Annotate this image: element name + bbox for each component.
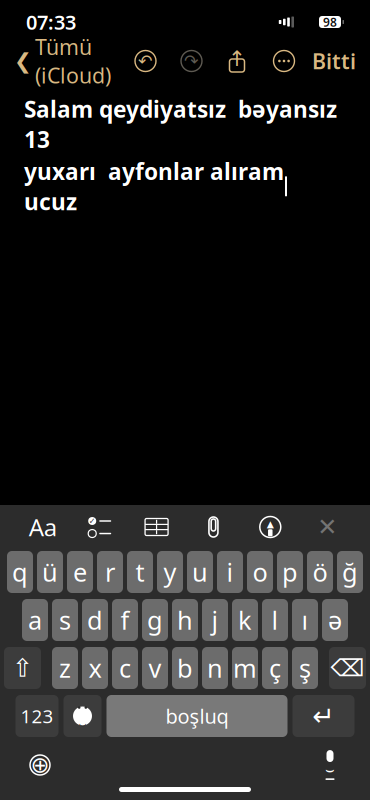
- staticText: ⇧: [12, 654, 33, 682]
- button[interactable]: e: [67, 551, 93, 593]
- staticText: j: [211, 603, 218, 637]
- button[interactable]: Share: [226, 48, 248, 74]
- button[interactable]: Hide keyboard: [305, 509, 349, 545]
- button[interactable]: ı: [292, 599, 318, 641]
- button[interactable]: Redo: [179, 49, 203, 73]
- staticText: t: [135, 555, 144, 589]
- button[interactable]: Undo: [133, 49, 157, 73]
- button[interactable]: ❮: [14, 27, 111, 95]
- staticText: m: [233, 651, 257, 685]
- button[interactable]: ü: [37, 551, 63, 593]
- staticText: ü: [42, 555, 58, 589]
- button[interactable]: Attach: [191, 509, 235, 545]
- staticText: ↵: [312, 701, 334, 731]
- staticText: d: [87, 603, 103, 637]
- staticText: ⌫: [330, 654, 364, 682]
- staticText: p: [282, 555, 298, 589]
- staticText: ğ: [342, 555, 358, 589]
- button[interactable]: q: [7, 551, 33, 593]
- button[interactable]: ö: [307, 551, 333, 593]
- staticText: f: [120, 603, 129, 637]
- button[interactable]: j: [202, 599, 228, 641]
- button[interactable]: Delete: [329, 647, 366, 689]
- button[interactable]: boşluq: [106, 695, 287, 737]
- staticText: Aa: [29, 511, 57, 543]
- staticText: ✕: [317, 513, 337, 541]
- staticText: ç: [269, 651, 281, 685]
- button[interactable]: a: [22, 599, 48, 641]
- staticText: ↷: [184, 51, 199, 71]
- staticText: 123: [20, 704, 53, 728]
- button[interactable]: Emoji: [63, 695, 101, 737]
- staticText: ↑: [228, 46, 246, 71]
- staticText: u: [192, 555, 208, 589]
- staticText: ‿: [79, 711, 86, 727]
- staticText: k: [238, 603, 252, 637]
- staticText: Bitti: [312, 47, 356, 75]
- staticText: v: [148, 651, 161, 685]
- button[interactable]: g: [142, 599, 168, 641]
- button[interactable]: r: [97, 551, 123, 593]
- button[interactable]: ğ: [337, 551, 363, 593]
- button[interactable]: b: [172, 647, 198, 689]
- button[interactable]: Text format: [21, 509, 65, 545]
- button[interactable]: l: [262, 599, 288, 641]
- staticText: Tümü (iCloud): [35, 33, 111, 89]
- staticText: x: [88, 651, 101, 685]
- button[interactable]: z: [52, 647, 78, 689]
- button[interactable]: Return: [292, 695, 354, 737]
- button[interactable]: i: [217, 551, 243, 593]
- button[interactable]: o: [247, 551, 273, 593]
- staticText: r: [105, 555, 115, 589]
- button[interactable]: h: [172, 599, 198, 641]
- button[interactable]: ə: [322, 599, 348, 641]
- staticText: i: [226, 555, 233, 589]
- button[interactable]: x: [82, 647, 108, 689]
- button[interactable]: Shift: [4, 647, 41, 689]
- button[interactable]: s: [52, 599, 78, 641]
- staticText: ö: [312, 555, 327, 589]
- staticText: ı: [301, 603, 308, 637]
- button[interactable]: More: [272, 49, 296, 73]
- button[interactable]: d: [82, 599, 108, 641]
- button[interactable]: k: [232, 599, 258, 641]
- button[interactable]: n: [202, 647, 228, 689]
- staticText: ❮: [14, 49, 32, 73]
- button[interactable]: Checklist: [78, 509, 122, 545]
- staticText: ə: [328, 603, 342, 637]
- staticText: c: [119, 651, 131, 685]
- button[interactable]: t: [127, 551, 153, 593]
- button[interactable]: ç: [262, 647, 288, 689]
- button[interactable]: y: [157, 551, 183, 593]
- staticText: a: [28, 603, 42, 637]
- staticText: ▲: [267, 519, 274, 529]
- button[interactable]: p: [277, 551, 303, 593]
- button[interactable]: Table: [135, 509, 179, 545]
- staticText: yuxarı ayfonlar alıram ucuz: [24, 156, 284, 216]
- staticText: n: [207, 651, 223, 685]
- button[interactable]: Next keyboard: [18, 745, 62, 785]
- button[interactable]: Markup: [248, 509, 292, 545]
- button[interactable]: m: [232, 647, 258, 689]
- button[interactable]: ş: [292, 647, 318, 689]
- button[interactable]: u: [187, 551, 213, 593]
- button[interactable]: 123: [15, 695, 58, 737]
- staticText: ✓: [89, 516, 96, 526]
- staticText: boşluq: [165, 703, 228, 729]
- staticText: y: [163, 555, 176, 589]
- staticText: ↶: [138, 51, 153, 71]
- staticText: h: [177, 603, 193, 637]
- staticText: ⊕: [30, 752, 49, 778]
- staticText: e: [73, 555, 87, 589]
- button[interactable]: Bitti: [312, 41, 356, 81]
- button[interactable]: c: [112, 647, 138, 689]
- staticText: 07:33: [26, 9, 76, 35]
- staticText: l: [271, 603, 278, 637]
- button[interactable]: Dictate: [308, 745, 352, 785]
- staticText: z: [59, 651, 71, 685]
- staticText: b: [177, 651, 193, 685]
- staticText: 98: [323, 14, 337, 30]
- staticText: q: [12, 555, 28, 589]
- button[interactable]: f: [112, 599, 138, 641]
- button[interactable]: v: [142, 647, 168, 689]
